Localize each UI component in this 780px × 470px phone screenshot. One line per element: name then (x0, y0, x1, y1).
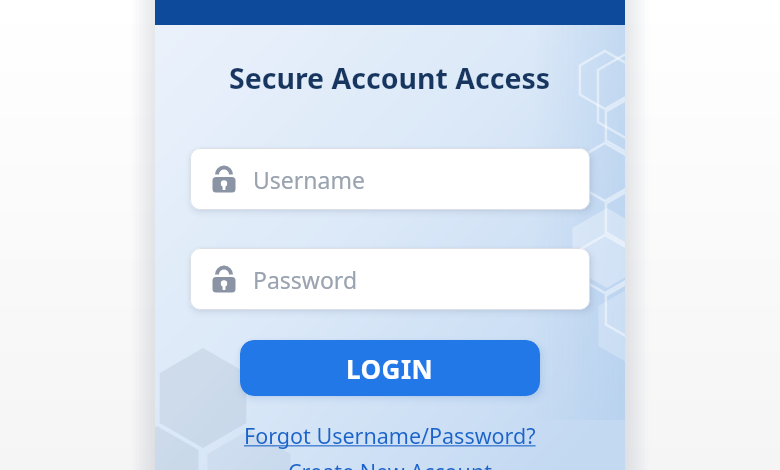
staticText: Password (253, 264, 358, 295)
staticText: LOGIN (346, 351, 434, 386)
button[interactable]: Forgot Username/Password? (244, 421, 536, 450)
button[interactable]: Password (190, 248, 590, 310)
staticText: Secure Account Access (229, 59, 551, 98)
staticText: Username (253, 164, 365, 195)
button[interactable]: Create New Account (288, 457, 492, 470)
button[interactable]: Username (190, 148, 590, 210)
button[interactable]: LOGIN (240, 340, 540, 396)
